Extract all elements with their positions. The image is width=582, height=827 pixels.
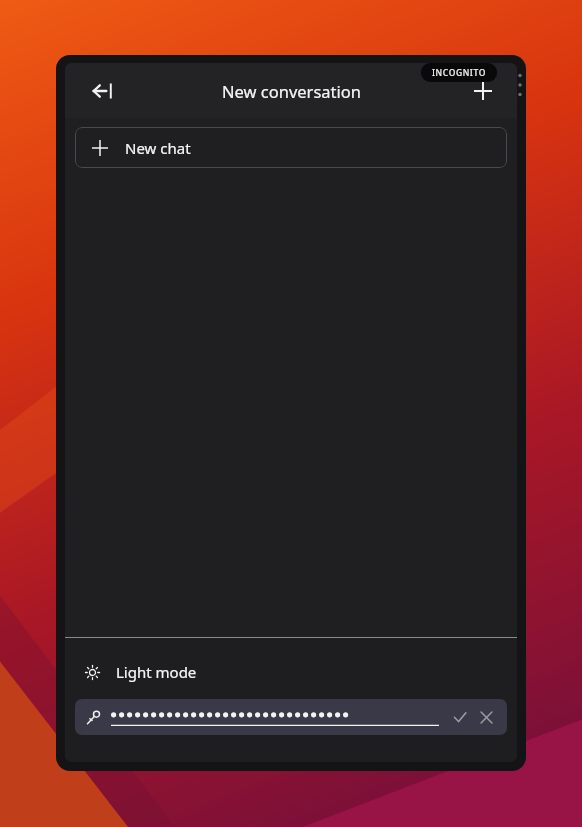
button[interactable]: Cancel [475, 706, 497, 728]
button[interactable]: Back [82, 71, 122, 111]
button[interactable]: Confirm [449, 706, 471, 728]
staticText: INCOGNITO [432, 67, 486, 79]
button[interactable]: Confirm [75, 699, 507, 735]
button[interactable]: Menu [514, 68, 526, 102]
button[interactable]: New conversation [463, 71, 503, 111]
staticText: Light mode [116, 662, 197, 682]
staticText: New chat [125, 138, 191, 158]
staticText: New conversation [222, 80, 361, 102]
button[interactable]: New chat [75, 127, 507, 168]
button[interactable]: Light mode [65, 655, 517, 689]
